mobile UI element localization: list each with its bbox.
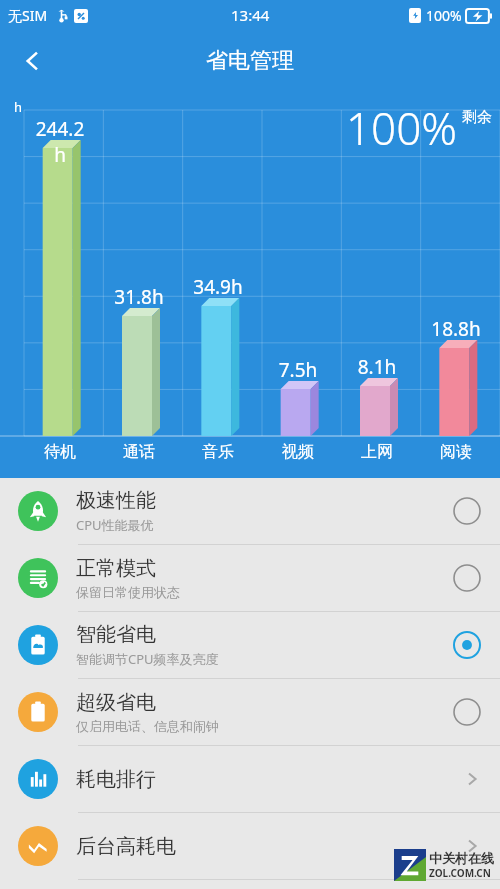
staticText: 7.5h [268,357,328,383]
staticText: 剩余 [462,108,492,127]
staticText: 仅启用电话、信息和闹钟 [76,718,219,734]
button[interactable]: 正常模式 [0,545,500,611]
staticText: 视频 [268,442,328,462]
staticText: 244.2h [30,116,90,168]
staticText: CPU性能最优 [76,516,154,534]
staticText: 中关村在线 [429,850,494,866]
staticText: 极速性能 [76,488,156,513]
staticText: 100% [346,98,458,158]
button[interactable]: 耗电排行 [0,746,500,812]
staticText: 待机 [30,442,90,462]
staticText: 无SIM [8,6,48,25]
staticText: ZOL.COM.CN [429,866,491,880]
staticText: 34.9h [188,274,248,300]
button[interactable]: 超级省电 [0,679,500,745]
staticText: 31.8h [109,284,169,310]
staticText: 智能调节CPU频率及亮度 [76,650,219,668]
staticText: 智能省电 [76,622,156,647]
staticText: 音乐 [188,442,248,462]
staticText: 8.1h [347,354,407,380]
staticText: 耗电排行 [76,767,462,792]
staticText: 通话 [109,442,169,462]
staticText: 18.8h [426,316,486,342]
staticText: 后台高耗电 [76,834,462,859]
staticText: 阅读 [426,442,486,462]
staticText: 上网 [347,442,407,462]
staticText: 保留日常使用状态 [76,584,180,600]
staticText: 省电管理 [206,47,294,75]
button[interactable]: 后台高耗电 [0,813,500,879]
staticText: 13:44 [231,5,270,25]
staticText: 100% [426,6,462,25]
staticText: 正常模式 [76,556,156,581]
button[interactable]: 极速性能 [0,478,500,544]
staticText: 超级省电 [76,690,156,715]
button[interactable]: 智能省电 [0,612,500,678]
staticText: h [14,98,23,116]
button[interactable]: Back [10,38,56,84]
